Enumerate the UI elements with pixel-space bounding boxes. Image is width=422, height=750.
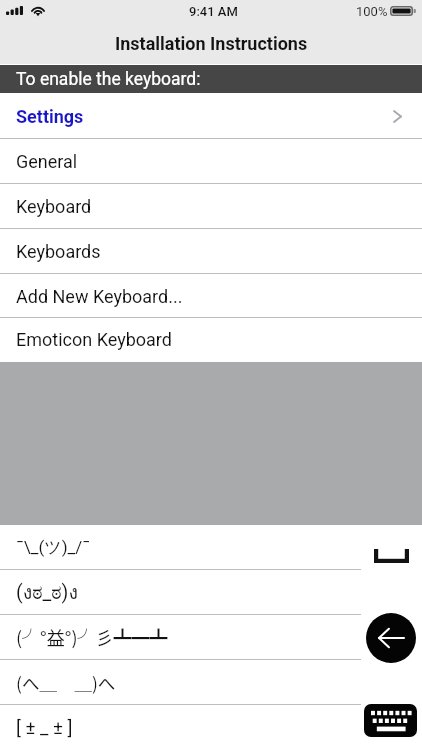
button[interactable]: Back xyxy=(366,613,416,663)
staticText: 100% xyxy=(356,4,388,19)
staticText: [ ± _ ± ] xyxy=(16,717,73,739)
staticText: (╯°益°)╯彡┻━┻ xyxy=(16,624,168,650)
button[interactable]: (งಠ_ಠ)ง xyxy=(0,570,361,615)
button[interactable]: Emoticon Keyboard xyxy=(0,318,422,362)
button[interactable]: Keyboard xyxy=(364,704,417,737)
staticText: General xyxy=(16,151,78,172)
staticText: 9:41 AM xyxy=(189,4,238,19)
staticText: ¯\_(ツ)_/¯ xyxy=(16,537,91,558)
staticText: Keyboards xyxy=(16,241,101,262)
button[interactable]: To enable the keyboard: xyxy=(0,65,422,93)
button[interactable]: Add New Keyboard... xyxy=(0,274,422,319)
staticText: Emoticon Keyboard xyxy=(16,329,172,350)
button[interactable]: Settings xyxy=(0,94,422,139)
button[interactable]: (へ＿ ＿)へ xyxy=(0,660,361,705)
button[interactable]: Space xyxy=(374,549,409,563)
button[interactable]: Keyboards xyxy=(0,229,422,274)
staticText: (へ＿ ＿)へ xyxy=(16,670,116,695)
staticText: Installation Instructions xyxy=(115,33,308,54)
button[interactable]: [ ± _ ± ] xyxy=(0,705,361,750)
button[interactable]: (╯°益°)╯彡┻━┻ xyxy=(0,615,361,660)
staticText: (งಠ_ಠ)ง xyxy=(16,577,78,608)
staticText: To enable the keyboard: xyxy=(16,69,201,90)
staticText: Settings xyxy=(16,106,84,127)
button[interactable]: ¯\_(ツ)_/¯ xyxy=(0,525,361,570)
button[interactable]: Keyboard xyxy=(0,184,422,229)
button[interactable]: General xyxy=(0,139,422,184)
staticText: Keyboard xyxy=(16,196,92,217)
staticText: Add New Keyboard... xyxy=(16,286,183,307)
